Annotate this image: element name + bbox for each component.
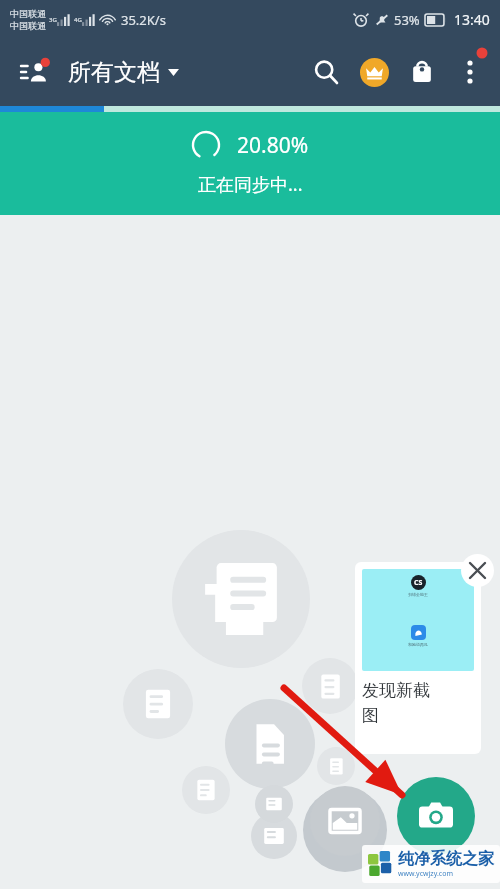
- button[interactable]: 所有文档: [64, 52, 183, 93]
- button[interactable]: Close: [461, 554, 494, 587]
- staticText: 图: [362, 705, 379, 726]
- staticText: 中国联通: [10, 8, 46, 19]
- staticText: 和她说再见: [408, 642, 428, 647]
- staticText: 3G: [49, 16, 57, 24]
- button[interactable]: More options: [446, 48, 494, 96]
- button[interactable]: Contacts: [14, 50, 58, 94]
- button[interactable]: Pick image: [310, 786, 380, 856]
- button[interactable]: Camera scan: [397, 777, 475, 855]
- staticText: 35.2K/s: [121, 11, 166, 29]
- staticText: 所有文档: [68, 58, 160, 87]
- button[interactable]: VIP: [350, 48, 398, 96]
- staticText: www.ycwjzy.com: [398, 869, 453, 879]
- staticText: CS: [414, 578, 423, 588]
- staticText: 20.80%: [237, 131, 309, 160]
- button[interactable]: Store: [398, 48, 446, 96]
- staticText: 4G: [74, 16, 82, 24]
- staticText: 纯净系统之家: [398, 849, 494, 869]
- button[interactable]: Search: [302, 48, 350, 96]
- button[interactable]: CS: [355, 562, 481, 754]
- button[interactable]: Note: [255, 785, 293, 823]
- staticText: 发现新截: [362, 680, 430, 701]
- staticText: 扫描全能王: [408, 592, 428, 597]
- staticText: 13:40: [454, 10, 490, 29]
- staticText: 中国联通: [10, 20, 46, 31]
- staticText: 53%: [394, 11, 420, 29]
- staticText: 正在同步中...: [198, 172, 303, 197]
